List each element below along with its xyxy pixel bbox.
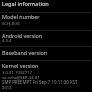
staticText: SMP PREEMPT Fri Sep 7 10:11:30 KST bbox=[2, 79, 78, 85]
staticText: 3.0.31-1092717 bbox=[2, 70, 32, 76]
button[interactable]: Kernel version bbox=[0, 61, 92, 92]
staticText: 2012 bbox=[2, 85, 12, 91]
staticText: Kernel version bbox=[2, 62, 39, 69]
button[interactable]: Baseband version bbox=[0, 47, 92, 60]
staticText: se.infra@SEP-34 #1 bbox=[2, 75, 40, 81]
staticText: Baseband version bbox=[2, 49, 48, 56]
button[interactable]: Model number bbox=[0, 13, 92, 30]
staticText: Model number bbox=[2, 13, 40, 20]
staticText: 4.3.4 bbox=[2, 38, 12, 44]
staticText: SCH-I535 bbox=[2, 21, 21, 27]
staticText: Android version bbox=[2, 32, 43, 39]
staticText: Legal information bbox=[2, 0, 49, 8]
button[interactable]: Android version bbox=[0, 31, 92, 46]
